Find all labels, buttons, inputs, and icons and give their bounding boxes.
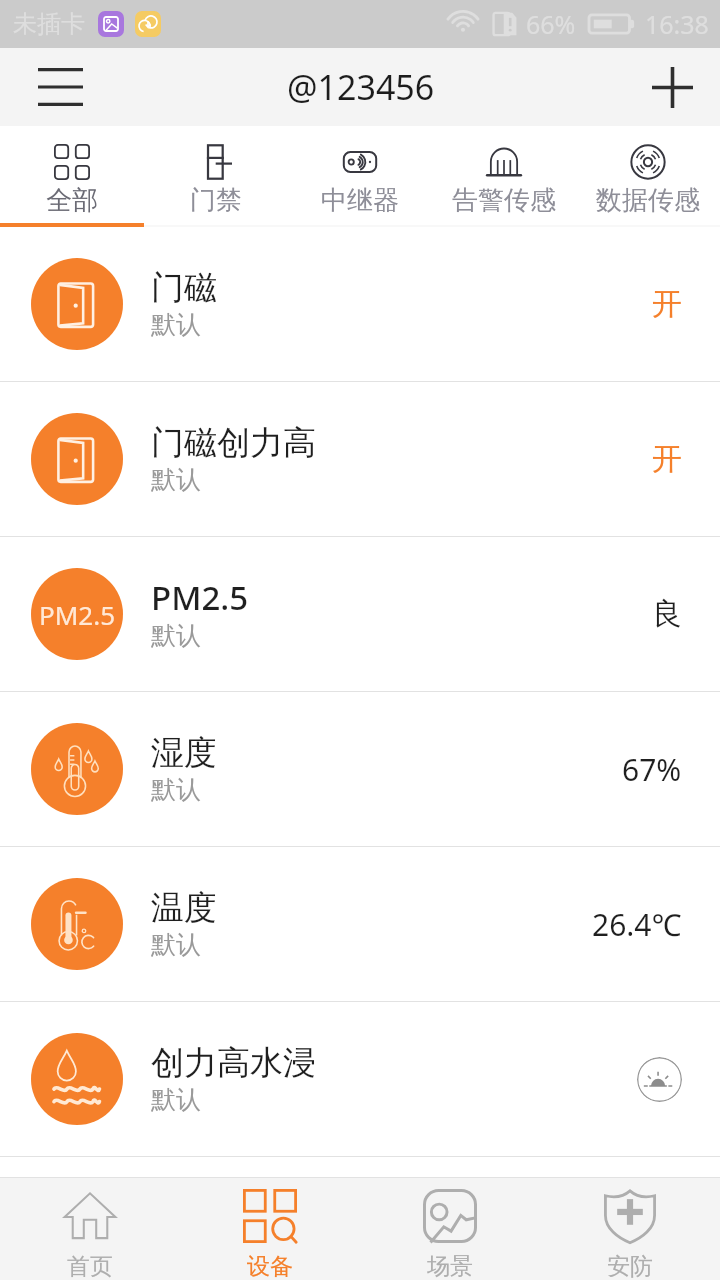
staticText: 默认 xyxy=(151,620,201,651)
staticText: 26.4℃ xyxy=(592,904,682,945)
button[interactable]: 设备 xyxy=(180,1178,360,1280)
button[interactable]: 湿度 xyxy=(0,692,720,846)
staticText: 数据传感 xyxy=(596,184,700,217)
staticText: 开 xyxy=(652,440,682,478)
button[interactable]: PM2.5 xyxy=(0,537,720,691)
staticText: 全部 xyxy=(46,184,98,217)
staticText: PM2.5 xyxy=(151,575,249,620)
button[interactable]: 温度 xyxy=(0,847,720,1001)
button[interactable]: Add xyxy=(624,48,720,126)
button[interactable]: 门磁 xyxy=(0,227,720,381)
staticText: 温度 xyxy=(151,887,217,929)
staticText: 告警传感 xyxy=(452,184,556,217)
staticText: 创力高水浸 xyxy=(151,1042,316,1084)
staticText: 66% xyxy=(526,7,576,41)
button[interactable]: 首页 xyxy=(0,1178,180,1280)
staticText: 默认 xyxy=(151,929,201,960)
staticText: 设备 xyxy=(247,1252,293,1280)
staticText: 默认 xyxy=(151,1084,201,1115)
button[interactable]: 门磁创力高 xyxy=(0,382,720,536)
staticText: 首页 xyxy=(67,1252,113,1280)
staticText: 中继器 xyxy=(321,184,399,217)
staticText: 良 xyxy=(652,595,682,633)
staticText: 默认 xyxy=(151,774,201,805)
button[interactable]: Menu xyxy=(0,48,121,126)
staticText: 67% xyxy=(622,749,682,790)
staticText: @123456 xyxy=(287,64,435,110)
staticText: 场景 xyxy=(427,1252,473,1280)
staticText: 安防 xyxy=(607,1252,653,1280)
staticText: 门禁 xyxy=(190,184,242,217)
staticText: 开 xyxy=(652,285,682,323)
staticText: 未插卡 xyxy=(13,9,85,39)
button[interactable]: 数据传感 xyxy=(576,126,720,227)
button[interactable]: 中继器 xyxy=(288,126,432,227)
staticText: 默认 xyxy=(151,309,201,340)
staticText: 门磁创力高 xyxy=(151,422,316,464)
staticText: 门磁 xyxy=(151,267,217,309)
button[interactable]: 全部 xyxy=(0,126,144,227)
staticText: 默认 xyxy=(151,464,201,495)
button[interactable]: 安防 xyxy=(540,1178,720,1280)
button[interactable]: 创力高水浸 xyxy=(0,1002,720,1156)
button[interactable]: 门禁 xyxy=(144,126,288,227)
button[interactable]: 告警传感 xyxy=(432,126,576,227)
button[interactable]: 场景 xyxy=(360,1178,540,1280)
staticText: 16:38 xyxy=(645,7,709,41)
staticText: 湿度 xyxy=(151,732,217,774)
staticText: PM2.5 xyxy=(39,597,116,632)
